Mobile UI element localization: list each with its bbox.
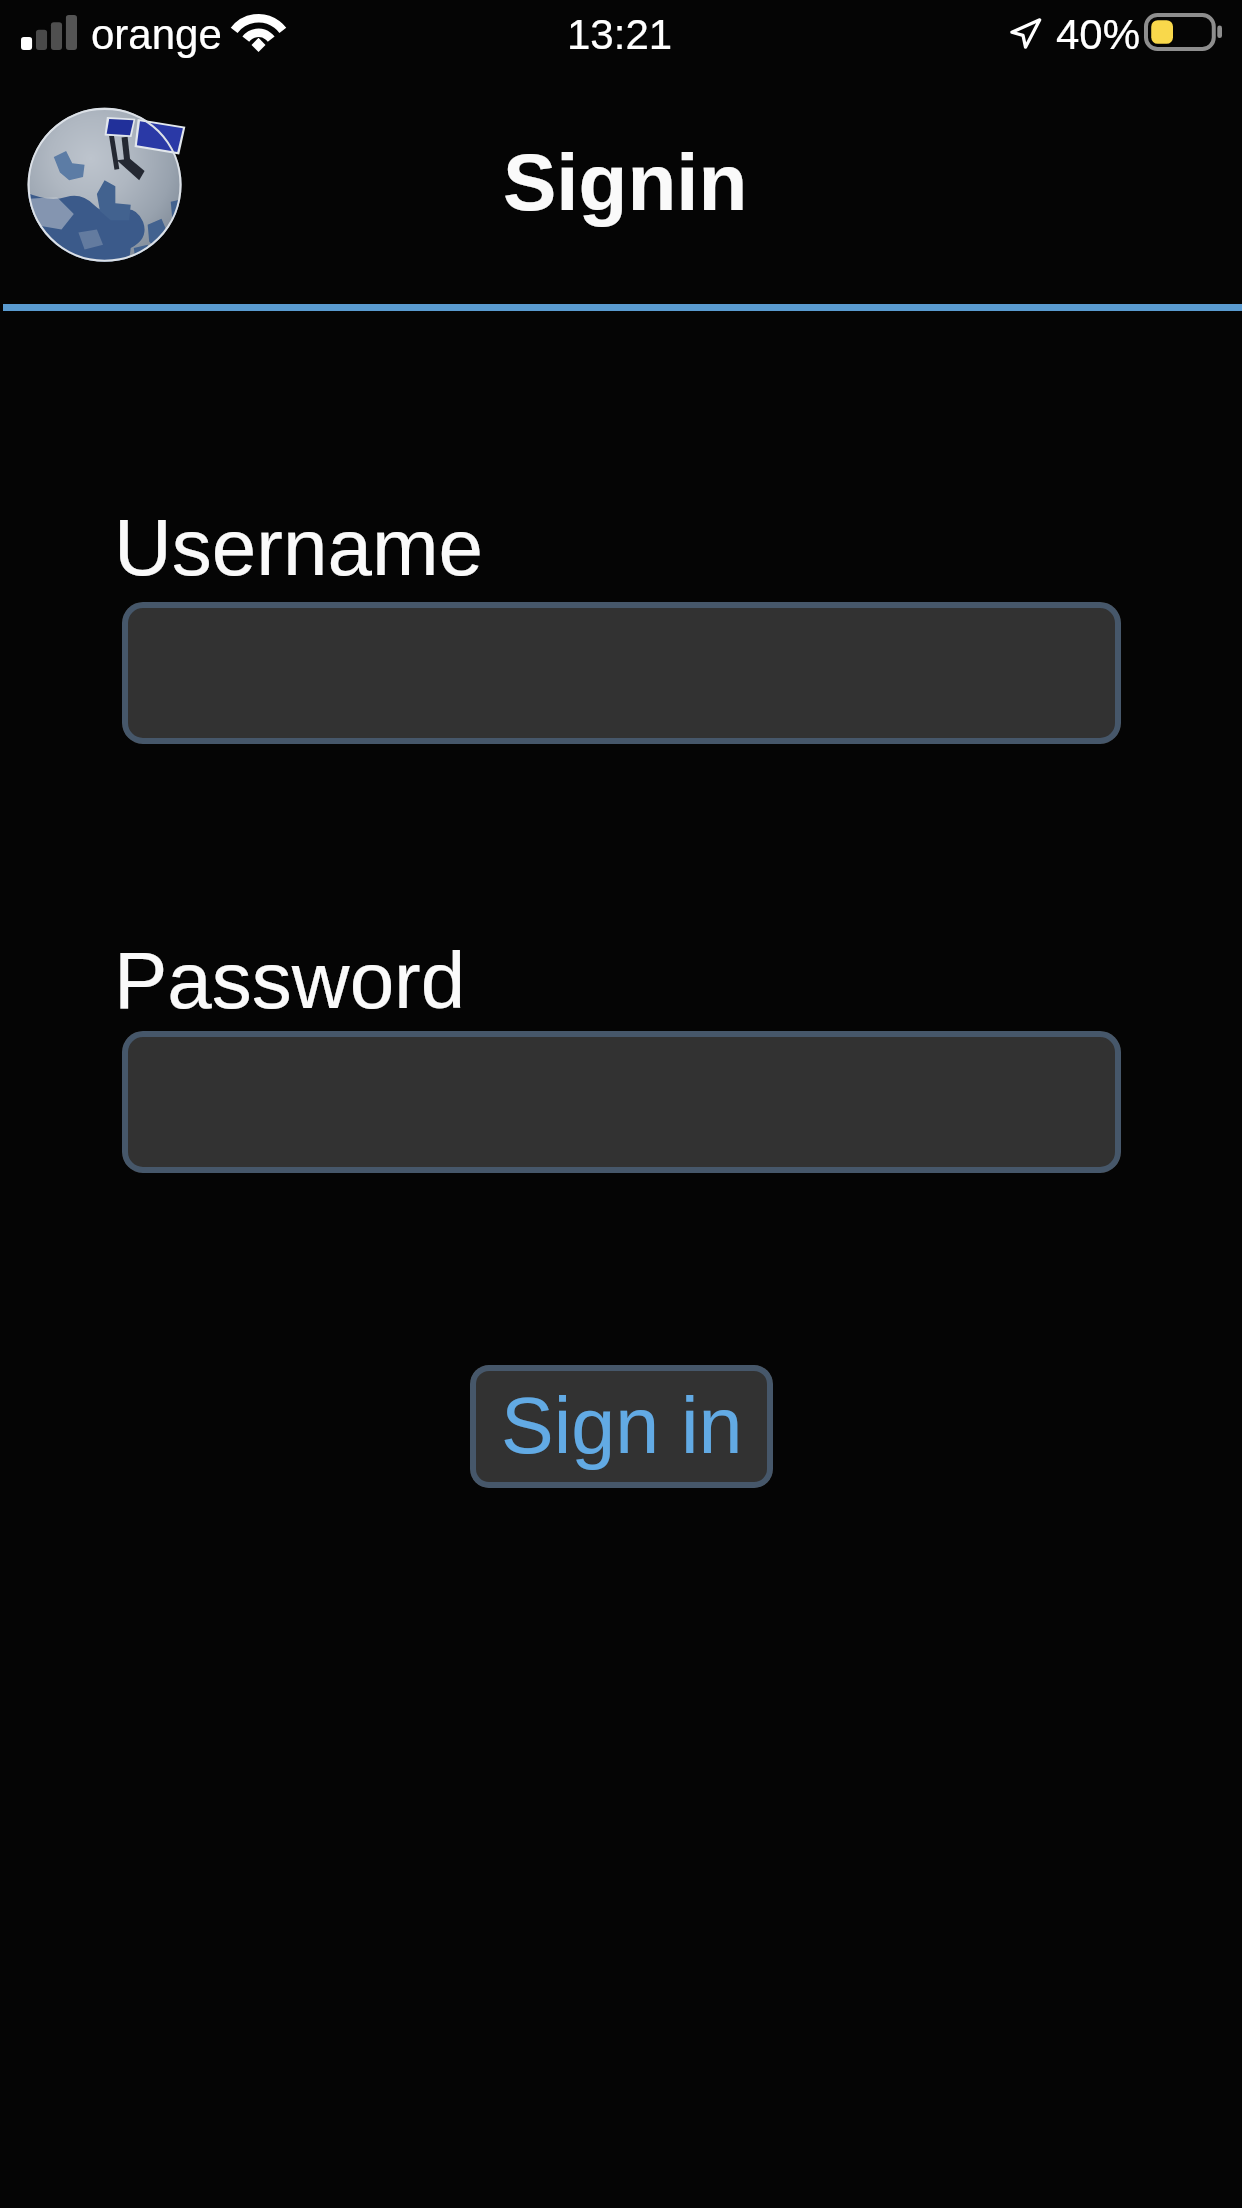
- other: Location: [1010, 18, 1041, 49]
- staticText: Password: [114, 936, 466, 1025]
- button[interactable]: Site logo: [26, 103, 188, 265]
- staticText: Sign in: [501, 1381, 743, 1469]
- button[interactable]: Password input field: [122, 1031, 1121, 1173]
- button[interactable]: Sign in: [470, 1365, 773, 1488]
- staticText: Signin: [503, 138, 748, 227]
- staticText: 40%: [1056, 11, 1141, 58]
- staticText: Username: [114, 503, 484, 592]
- button[interactable]: Username input field: [122, 602, 1121, 744]
- staticText: orange: [91, 11, 222, 58]
- other: Wi-Fi: [232, 10, 285, 48]
- staticText: 13:21: [567, 11, 673, 58]
- other: Battery 40 percent: [1144, 13, 1222, 51]
